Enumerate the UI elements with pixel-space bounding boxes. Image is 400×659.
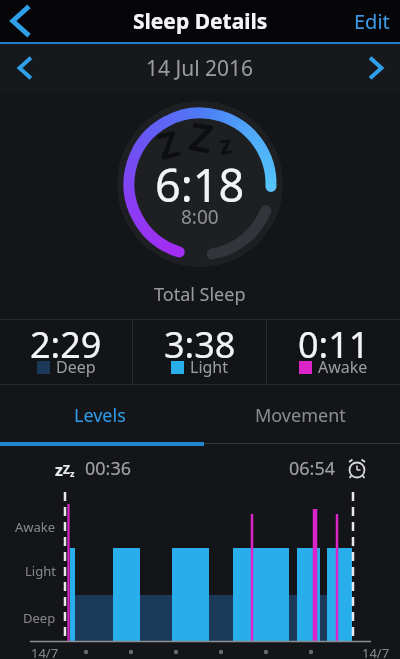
staticText: 6:18 [155, 154, 245, 215]
button[interactable] [0, 44, 48, 92]
staticText: Total Sleep [154, 282, 246, 307]
staticText: Movement [255, 403, 346, 428]
button[interactable] [352, 44, 400, 92]
button[interactable]: 0:11 [267, 320, 400, 384]
staticText: z [55, 459, 63, 481]
button[interactable]: 2:29 [0, 320, 132, 384]
staticText: Levels [74, 403, 126, 428]
staticText: Sleep Details [133, 7, 268, 36]
staticText: 14/7 [362, 644, 390, 659]
staticText: 3:38 [164, 320, 236, 369]
staticText: Z [186, 108, 217, 165]
staticText: Awake [15, 518, 56, 536]
staticText: Light [190, 356, 229, 378]
staticText: Edit [354, 8, 390, 35]
button[interactable]: Levels [0, 385, 200, 446]
staticText: Light [25, 562, 56, 580]
staticText: Awake [318, 356, 368, 378]
button[interactable]: Edit [354, 8, 390, 35]
staticText: z [217, 125, 234, 162]
staticText: Z [63, 461, 70, 477]
staticText: 2:29 [30, 320, 102, 369]
button[interactable]: 3:38 [133, 320, 266, 384]
staticText: Deep [23, 609, 56, 627]
staticText: 14/7 [31, 644, 59, 659]
staticText: 00:36 [85, 456, 132, 481]
button[interactable]: Movement [200, 385, 400, 446]
staticText: z [70, 467, 75, 479]
staticText: 14 Jul 2016 [146, 54, 254, 83]
staticText: Deep [56, 356, 96, 378]
staticText: 06:54 [289, 456, 336, 481]
staticText: Z [152, 118, 185, 171]
button[interactable] [0, 0, 40, 42]
staticText: 0:11 [298, 320, 370, 369]
staticText: 8:00 [181, 204, 219, 230]
